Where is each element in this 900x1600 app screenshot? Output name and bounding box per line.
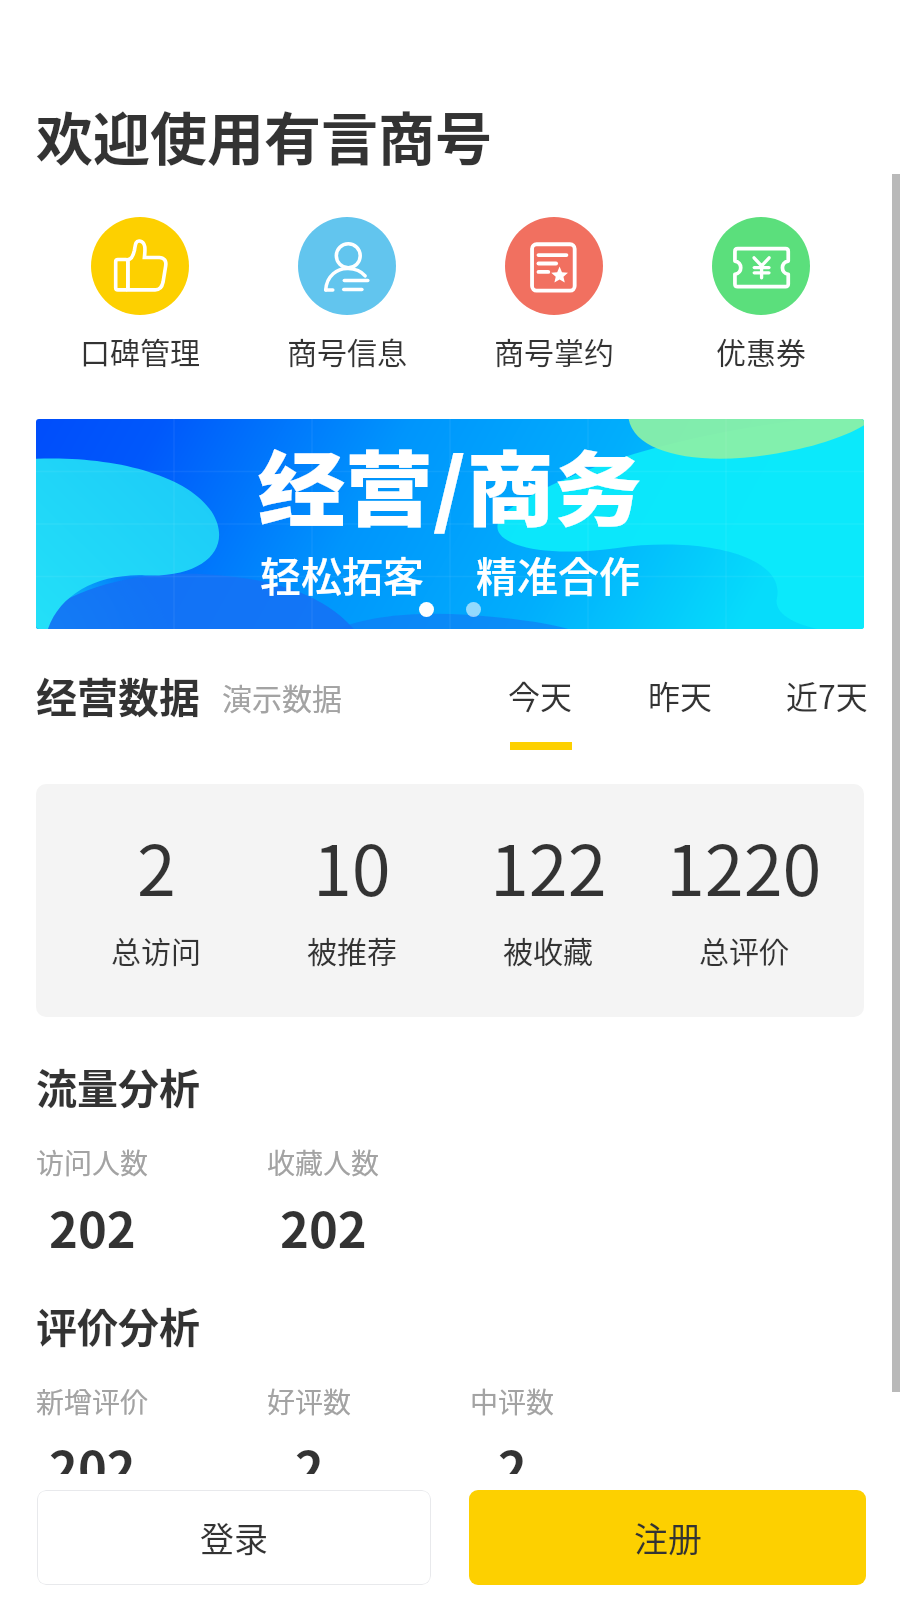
staticText: 被推荐 bbox=[307, 928, 397, 971]
button[interactable]: 昨天 bbox=[648, 665, 713, 750]
staticText: 122 bbox=[490, 815, 607, 916]
staticText: 经营数据 bbox=[36, 665, 200, 724]
button[interactable]: 注册 bbox=[469, 1490, 866, 1585]
staticText: 总评价 bbox=[699, 928, 789, 971]
button[interactable]: 口碑管理 bbox=[36, 217, 243, 372]
staticText: 2 bbox=[137, 815, 176, 916]
staticText: 10 bbox=[313, 815, 391, 916]
other: 商号信息 bbox=[298, 217, 396, 315]
staticText: 访问人数 bbox=[36, 1142, 149, 1183]
button[interactable]: 经营/商务 bbox=[36, 419, 864, 629]
staticText: 2 bbox=[498, 1430, 527, 1501]
staticText: 商号掌约 bbox=[494, 329, 614, 372]
button[interactable]: 商号信息 bbox=[243, 217, 450, 372]
staticText: 轻松拓客 bbox=[260, 544, 424, 603]
staticText: 流量分析 bbox=[36, 1056, 200, 1115]
staticText: 近7天 bbox=[786, 672, 868, 718]
other: 商号掌约 bbox=[505, 217, 603, 315]
staticText: 口碑管理 bbox=[80, 329, 200, 372]
staticText: 欢迎使用有言商号 bbox=[36, 94, 492, 177]
staticText: 好评数 bbox=[267, 1381, 352, 1422]
staticText: 商号信息 bbox=[287, 329, 407, 372]
staticText: 登录 bbox=[200, 1513, 268, 1562]
staticText: 精准合作 bbox=[476, 544, 640, 603]
staticText: 演示数据 bbox=[222, 675, 342, 718]
staticText: 新增评价 bbox=[36, 1381, 149, 1422]
staticText: 2 bbox=[295, 1430, 324, 1501]
button[interactable]: 近7天 bbox=[786, 665, 868, 750]
button[interactable]: 今天 bbox=[508, 665, 573, 750]
staticText: 优惠券 bbox=[716, 329, 806, 372]
staticText: 总访问 bbox=[111, 928, 201, 971]
button[interactable]: 登录 bbox=[37, 1490, 431, 1585]
staticText: 今天 bbox=[508, 672, 573, 718]
staticText: 昨天 bbox=[648, 672, 713, 718]
staticText: 注册 bbox=[634, 1513, 702, 1562]
staticText: 被收藏 bbox=[503, 928, 593, 971]
staticText: 经营/商务 bbox=[258, 425, 642, 542]
other: 口碑管理 bbox=[91, 217, 189, 315]
staticText: 评价分析 bbox=[36, 1295, 200, 1354]
other: 优惠券 bbox=[712, 217, 810, 315]
button[interactable]: 商号掌约 bbox=[450, 217, 657, 372]
staticText: 中评数 bbox=[470, 1381, 555, 1422]
staticText: 202 bbox=[49, 1191, 136, 1262]
staticText: 1220 bbox=[666, 815, 822, 916]
button[interactable]: 优惠券 bbox=[657, 217, 864, 372]
staticText: 收藏人数 bbox=[267, 1142, 380, 1183]
staticText: 202 bbox=[280, 1191, 367, 1262]
staticText: 202 bbox=[49, 1430, 136, 1501]
